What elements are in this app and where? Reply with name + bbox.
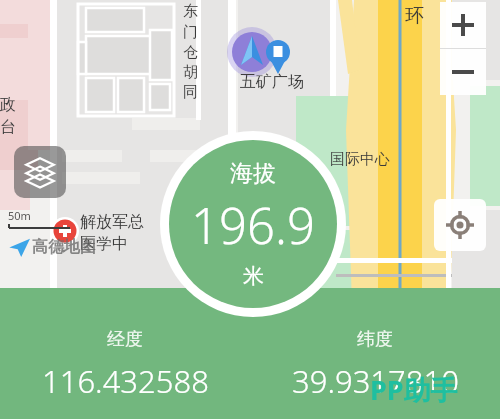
staticText: PP助手	[370, 371, 458, 408]
staticText: 高德地图	[32, 237, 96, 257]
staticText: 国际中心	[330, 150, 390, 169]
staticText: 纬度	[357, 328, 393, 351]
staticText: 50m	[8, 208, 31, 223]
button[interactable]: 海拔	[160, 131, 346, 317]
button[interactable]: 经度	[0, 328, 250, 402]
staticText: 解放军总 医学中	[80, 212, 144, 253]
staticText: 政 台	[0, 95, 16, 136]
staticText: 五矿广场	[240, 72, 304, 92]
button[interactable]: Zoom in	[440, 2, 486, 48]
button[interactable]: Map layers	[14, 146, 66, 198]
staticText: 经度	[107, 328, 143, 351]
staticText: 196.9	[191, 192, 315, 259]
staticText: 环	[405, 4, 424, 28]
staticText: 116.432588	[42, 360, 209, 402]
staticText: 米	[243, 263, 264, 289]
staticText: 东 门 仓 胡 同	[183, 2, 198, 101]
button[interactable]: 纬度	[250, 328, 500, 402]
button[interactable]: Zoom out	[440, 49, 486, 95]
button[interactable]: My location	[434, 199, 486, 251]
staticText: 39.9317810	[292, 360, 459, 402]
staticText: 海拔	[230, 159, 276, 188]
